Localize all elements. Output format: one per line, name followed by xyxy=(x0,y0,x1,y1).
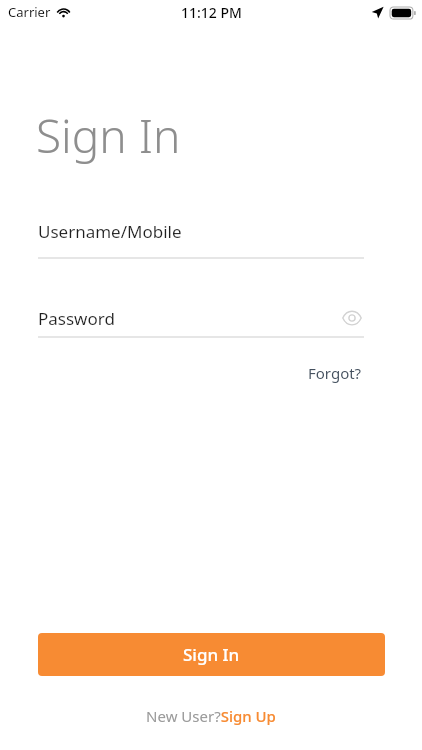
button[interactable]: Sign In xyxy=(38,633,385,676)
staticText: 11:12 PM xyxy=(181,3,242,22)
staticText: Carrier xyxy=(8,3,51,21)
button[interactable]: Password xyxy=(38,306,364,338)
staticText: New User?Sign Up xyxy=(146,706,276,726)
staticText: Sign In xyxy=(183,643,240,666)
button[interactable]: New User?Sign Up xyxy=(142,704,280,728)
staticText: Sign In xyxy=(36,104,181,167)
staticText: Forgot? xyxy=(308,363,362,383)
staticText: Password xyxy=(38,307,340,330)
button[interactable]: Forgot? xyxy=(306,360,364,386)
button[interactable]: Username/Mobile xyxy=(38,220,364,259)
button[interactable]: Show password xyxy=(340,306,364,330)
staticText: Username/Mobile xyxy=(38,220,182,243)
